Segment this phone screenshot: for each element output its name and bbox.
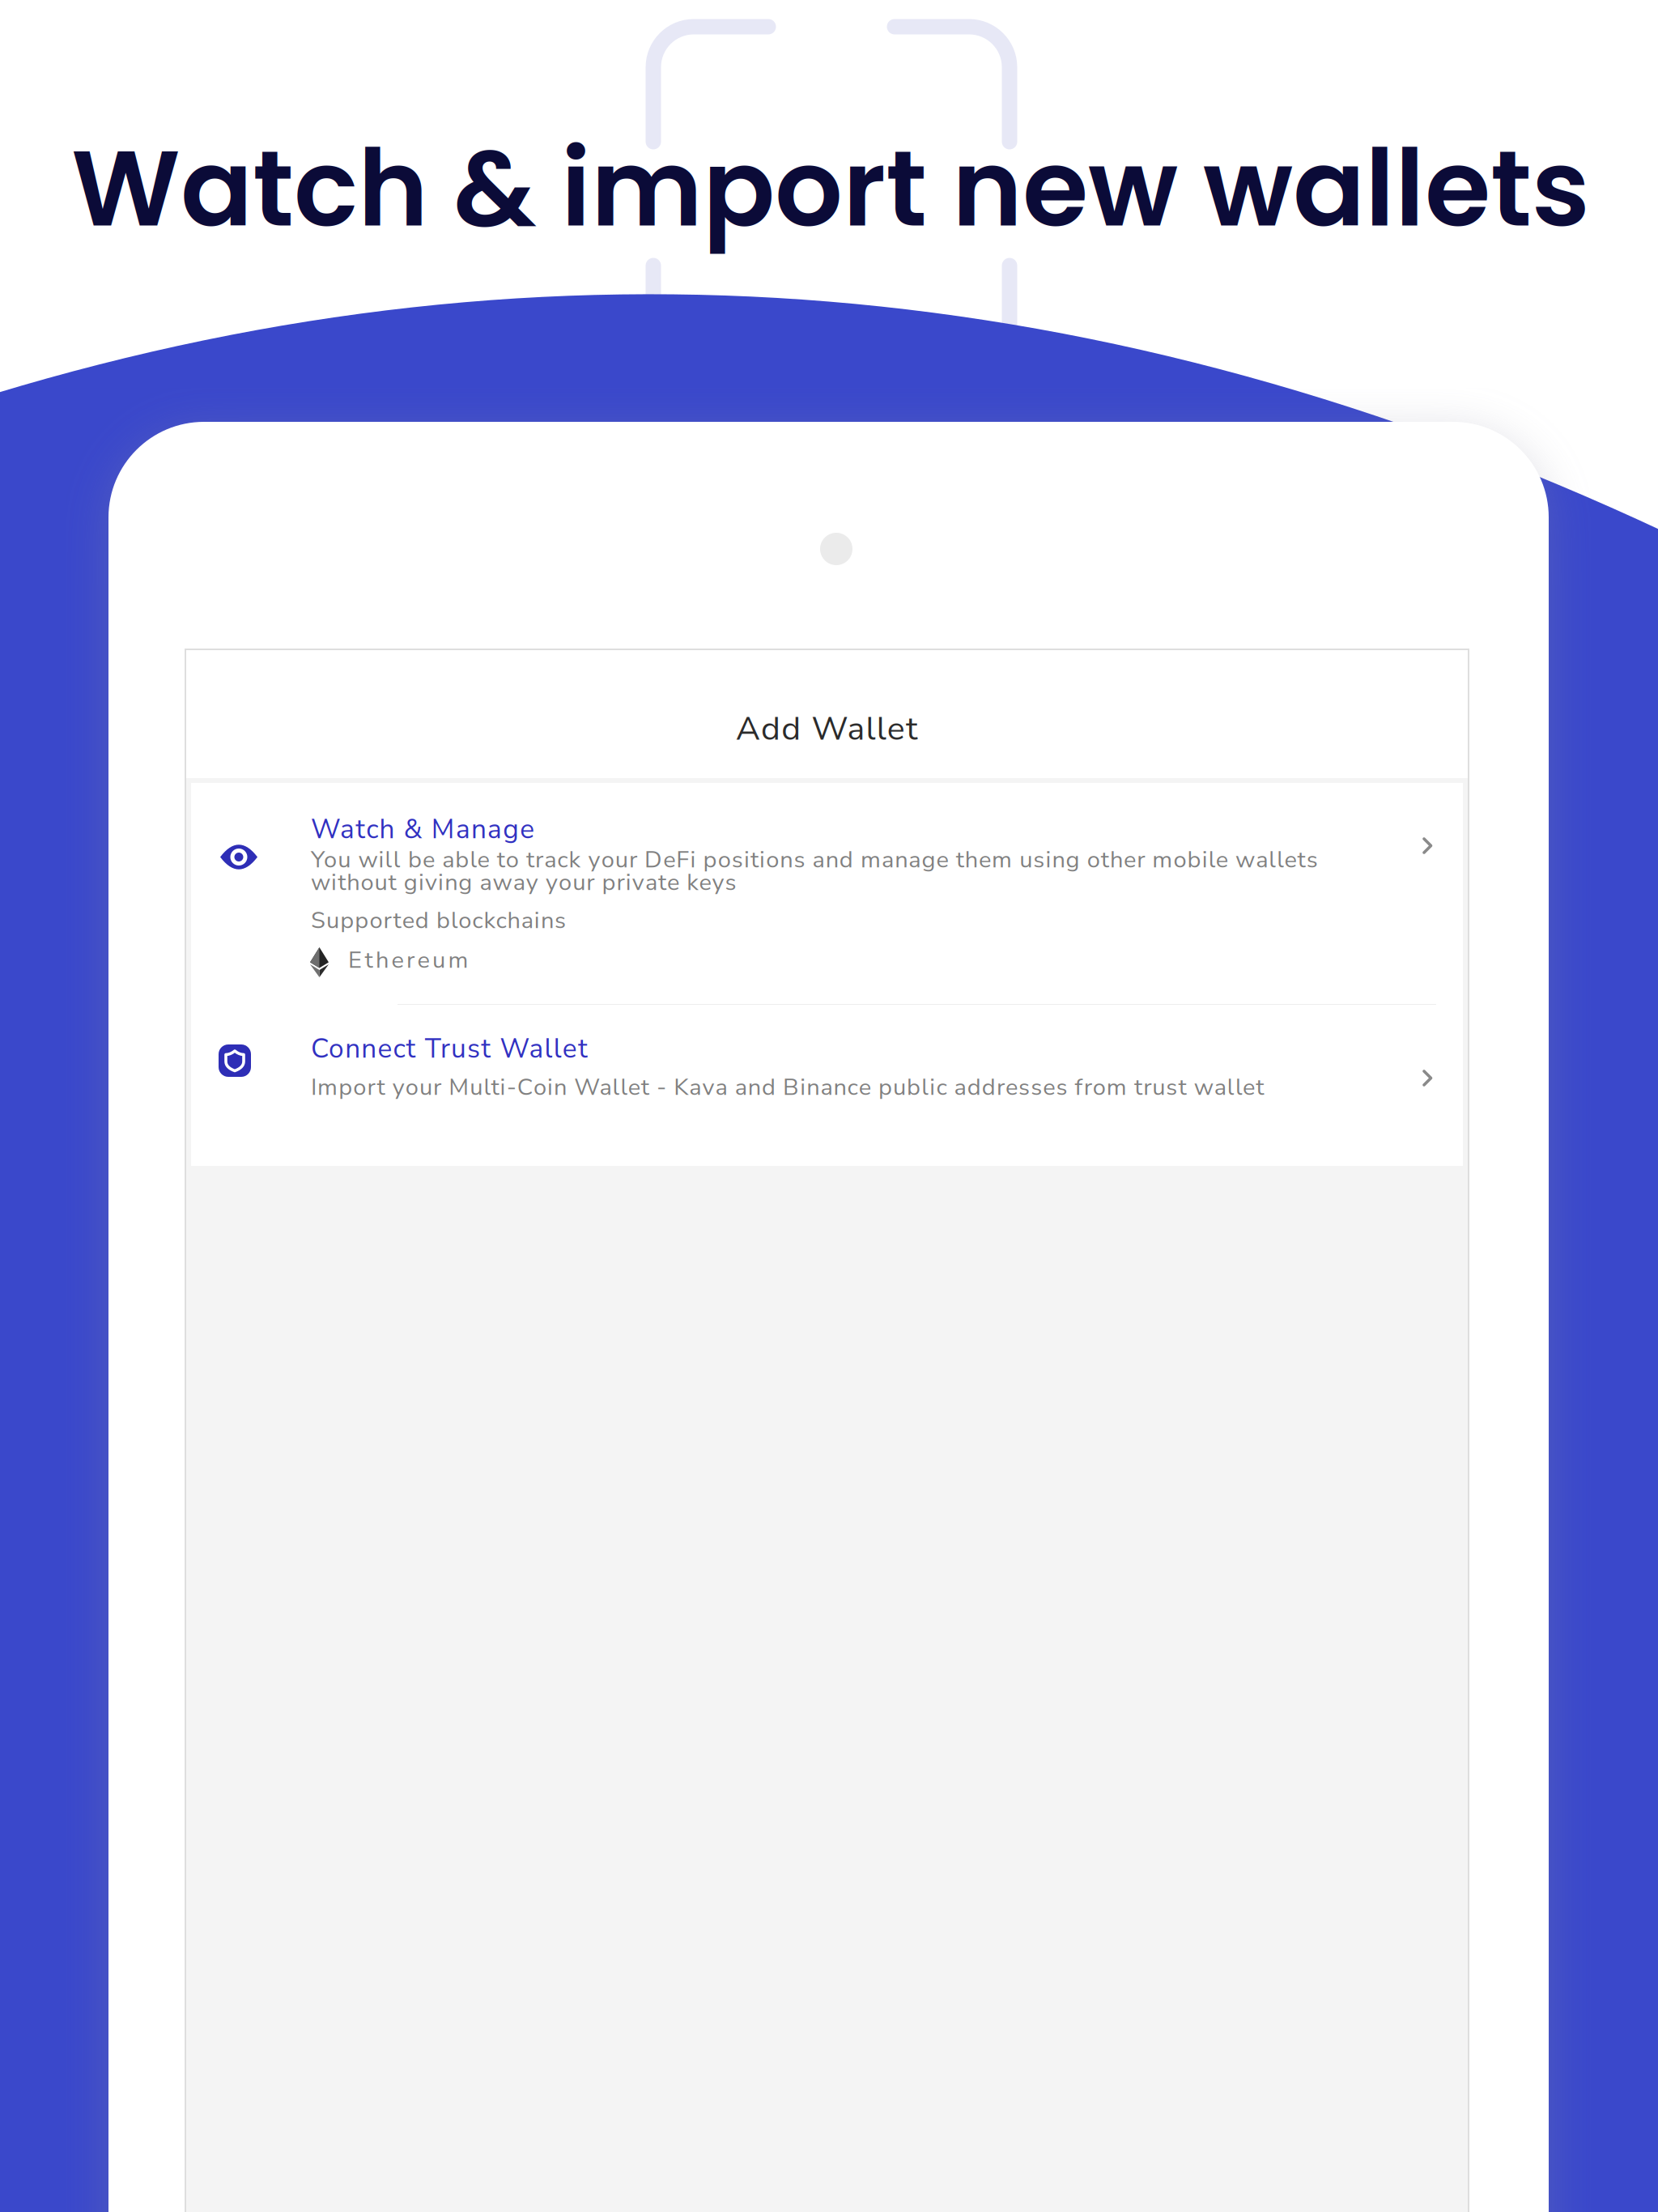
- staticText: Import your Multi-Coin Wallet - Kava and…: [311, 1071, 1264, 1103]
- staticText: Add Wallet: [736, 706, 917, 751]
- staticText: Watch & import new wallets: [71, 114, 1590, 263]
- button[interactable]: Connect Trust Wallet: [191, 1005, 1463, 1166]
- staticText: Ethereum: [348, 944, 468, 976]
- staticText: Supported blockchains: [311, 904, 566, 936]
- staticText: Watch & Manage: [311, 811, 535, 848]
- button[interactable]: Watch & Manage: [191, 783, 1463, 1004]
- staticText: Connect Trust Wallet: [311, 1030, 588, 1067]
- staticText: You will be able to track your DeFi posi…: [311, 844, 1318, 876]
- staticText: without giving away your private keys: [311, 866, 736, 898]
